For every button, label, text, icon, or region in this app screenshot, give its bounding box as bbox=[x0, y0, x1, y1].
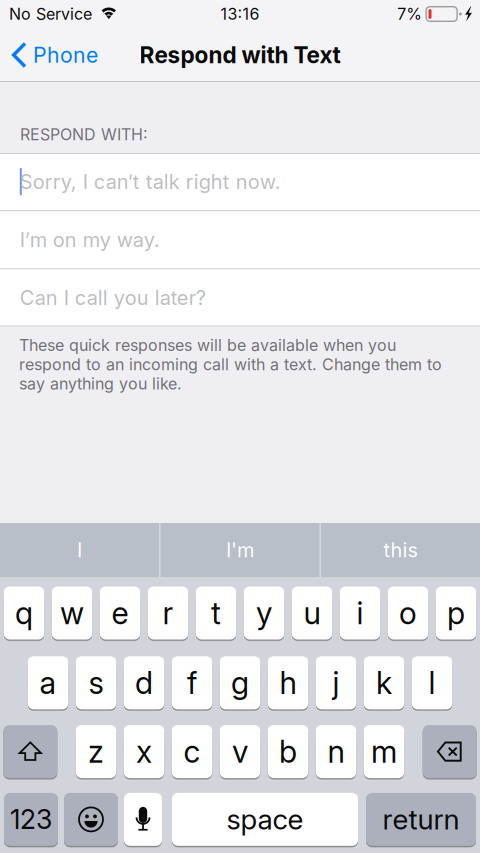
button[interactable]: this bbox=[321, 523, 480, 577]
staticText: i bbox=[356, 594, 363, 631]
button[interactable]: return bbox=[366, 793, 476, 847]
button[interactable]: a bbox=[28, 656, 68, 711]
button[interactable]: p bbox=[436, 586, 476, 641]
staticText: space bbox=[226, 802, 303, 836]
button[interactable]: j bbox=[316, 656, 356, 711]
staticText: this bbox=[383, 538, 417, 562]
button[interactable]: f bbox=[172, 656, 212, 711]
staticText: y bbox=[256, 594, 272, 631]
button[interactable]: Phone bbox=[0, 33, 130, 77]
staticText: k bbox=[376, 664, 392, 701]
staticText: j bbox=[332, 664, 339, 701]
staticText: t bbox=[211, 594, 221, 631]
staticText: 13:16 bbox=[220, 4, 259, 24]
staticText: 123 bbox=[10, 803, 52, 836]
button[interactable]: x bbox=[124, 725, 164, 779]
button[interactable]: Dictation bbox=[124, 793, 162, 847]
staticText: x bbox=[136, 733, 152, 770]
button[interactable]: q bbox=[4, 586, 44, 641]
staticText: These quick responses will be available … bbox=[19, 335, 442, 393]
button[interactable]: Sorry, I can’t talk right now. bbox=[0, 153, 480, 210]
staticText: I'm bbox=[226, 538, 254, 562]
staticText: m bbox=[371, 733, 397, 770]
button[interactable]: v bbox=[220, 725, 260, 779]
button[interactable]: w bbox=[52, 586, 92, 641]
staticText: b bbox=[279, 733, 297, 770]
button[interactable]: d bbox=[124, 656, 164, 711]
staticText: z bbox=[88, 733, 104, 770]
button[interactable]: Can I call you later? bbox=[0, 269, 480, 326]
staticText: g bbox=[231, 664, 249, 701]
button[interactable]: b bbox=[268, 725, 308, 779]
staticText: p bbox=[447, 594, 465, 631]
staticText: c bbox=[183, 733, 200, 770]
staticText: w bbox=[60, 594, 84, 631]
button[interactable]: g bbox=[220, 656, 260, 711]
staticText: Respond with Text bbox=[139, 41, 340, 69]
staticText: Sorry, I can’t talk right now. bbox=[20, 169, 281, 194]
button[interactable]: m bbox=[364, 725, 404, 779]
button[interactable]: Delete bbox=[423, 725, 477, 779]
staticText: f bbox=[187, 664, 197, 701]
staticText: q bbox=[15, 594, 33, 631]
staticText: s bbox=[88, 664, 103, 701]
staticText: RESPOND WITH: bbox=[20, 125, 148, 144]
staticText: h bbox=[279, 664, 296, 701]
button[interactable]: k bbox=[364, 656, 404, 711]
button[interactable]: n bbox=[316, 725, 356, 779]
staticText: d bbox=[135, 664, 153, 701]
button[interactable]: space bbox=[172, 793, 358, 847]
button[interactable]: 123 bbox=[4, 793, 58, 847]
button[interactable]: i bbox=[340, 586, 380, 641]
button[interactable]: z bbox=[76, 725, 116, 779]
staticText: I bbox=[77, 538, 82, 562]
staticText: a bbox=[39, 664, 56, 701]
staticText: n bbox=[327, 733, 344, 770]
staticText: v bbox=[232, 733, 248, 770]
staticText: o bbox=[399, 594, 417, 631]
staticText: u bbox=[303, 594, 320, 631]
staticText: l bbox=[428, 664, 435, 701]
button[interactable]: t bbox=[196, 586, 236, 641]
staticText: No Service bbox=[9, 4, 92, 24]
button[interactable]: h bbox=[268, 656, 308, 711]
button[interactable]: r bbox=[148, 586, 188, 641]
staticText: Phone bbox=[33, 42, 98, 68]
staticText: 7% bbox=[397, 4, 422, 24]
button[interactable]: y bbox=[244, 586, 284, 641]
button[interactable]: u bbox=[292, 586, 332, 641]
staticText: e bbox=[111, 594, 128, 631]
button[interactable]: e bbox=[100, 586, 140, 641]
button[interactable]: Emoji bbox=[64, 793, 118, 847]
button[interactable]: I'm bbox=[160, 523, 319, 577]
button[interactable]: I’m on my way. bbox=[0, 211, 480, 268]
staticText: r bbox=[162, 594, 173, 631]
button[interactable]: l bbox=[412, 656, 452, 711]
button[interactable]: c bbox=[172, 725, 212, 779]
staticText: return bbox=[382, 802, 459, 836]
button[interactable]: Shift bbox=[3, 725, 57, 779]
staticText: I’m on my way. bbox=[20, 228, 160, 252]
button[interactable]: s bbox=[76, 656, 116, 711]
staticText: Can I call you later? bbox=[20, 286, 206, 310]
button[interactable]: o bbox=[388, 586, 428, 641]
button[interactable]: I bbox=[0, 523, 159, 577]
